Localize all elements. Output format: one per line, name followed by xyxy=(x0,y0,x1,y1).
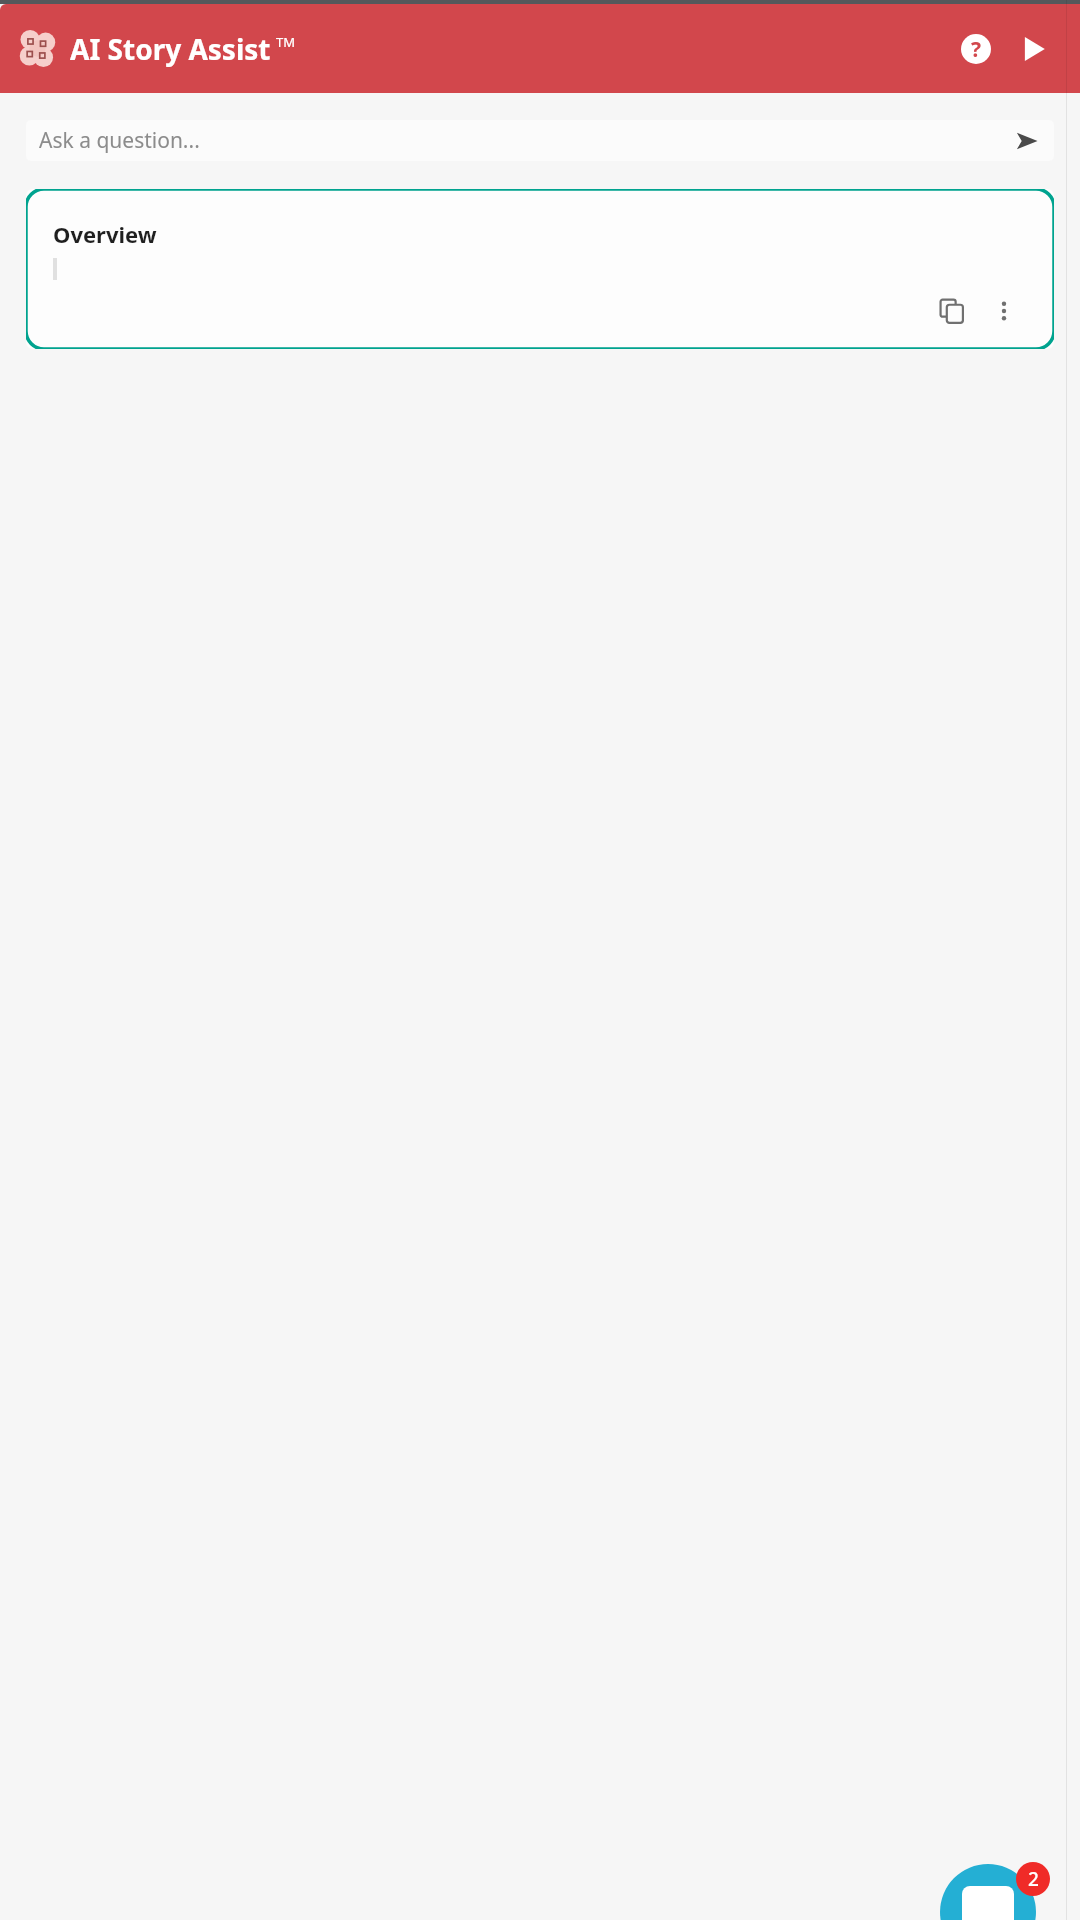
staticText: AI Story Assist xyxy=(70,30,271,68)
staticText: 2 xyxy=(1028,1866,1039,1892)
button[interactable]: Chat xyxy=(940,1864,1036,1920)
button[interactable]: Overview xyxy=(26,189,1054,349)
button[interactable]: Help xyxy=(952,25,1000,73)
staticText: Ask a question... xyxy=(39,126,200,155)
staticText: TM xyxy=(276,33,296,51)
staticText: ? xyxy=(971,35,982,64)
button[interactable]: Play xyxy=(1010,25,1058,73)
staticText: Overview xyxy=(53,219,157,249)
button[interactable]: Ask a question... xyxy=(26,120,1054,161)
button[interactable]: Copy xyxy=(930,289,974,333)
button[interactable]: More options xyxy=(982,289,1026,333)
button[interactable]: Send xyxy=(1012,126,1042,156)
